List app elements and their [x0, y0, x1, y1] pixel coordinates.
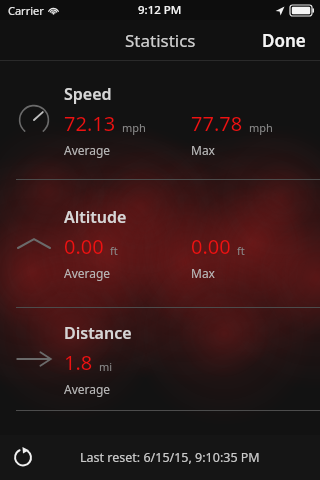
staticText: 9:12 PM	[138, 2, 182, 18]
button[interactable]: Reset	[0, 435, 46, 480]
button[interactable]: Distance	[0, 308, 320, 410]
staticText: Statistics	[125, 29, 196, 52]
button[interactable]: Speed	[0, 61, 320, 179]
staticText: 0.00	[191, 233, 231, 260]
staticText: 77.78	[191, 110, 243, 137]
staticText: mph	[249, 120, 273, 135]
staticText: 1.8	[64, 349, 93, 376]
staticText: mph	[122, 120, 146, 135]
staticText: Last reset: 6/15/15, 9:10:35 PM	[80, 449, 260, 466]
staticText: Max	[191, 265, 215, 281]
other: Altitude	[14, 224, 54, 264]
staticText: Average	[64, 381, 111, 397]
other: Distance	[14, 339, 54, 379]
staticText: Average	[64, 265, 111, 281]
staticText: mi	[99, 359, 113, 374]
staticText: Distance	[64, 322, 132, 344]
button[interactable]: Done	[248, 21, 320, 60]
staticText: Average	[64, 142, 111, 158]
staticText: ft	[110, 243, 118, 258]
staticText: 0.00	[64, 233, 104, 260]
staticText: 72.13	[64, 110, 116, 137]
staticText: Max	[191, 142, 215, 158]
staticText: Altitude	[64, 206, 127, 228]
staticText: Carrier	[8, 3, 44, 18]
staticText: ft	[237, 243, 245, 258]
staticText: Speed	[64, 83, 112, 105]
other: Speed	[14, 100, 54, 140]
button[interactable]: Altitude	[0, 180, 320, 307]
staticText: Done	[262, 29, 306, 52]
